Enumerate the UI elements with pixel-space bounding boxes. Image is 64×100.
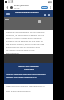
staticText: Notice: Attempts with the measurement [6,73,46,76]
staticText: location, as described in details of the [6,34,44,37]
staticText: to submit output data of the [6,49,35,52]
staticText: helpers and other relevant to it [6,76,37,79]
staticText: automatically the in locations and [6,46,40,49]
button[interactable]: Reply [41,6,48,9]
staticText: Reply [42,6,47,9]
staticText: Richer and Hawkins [18,65,39,68]
button[interactable]: Attachment [38,20,41,23]
staticText: instance to be defined by the user of [6,40,43,43]
button[interactable]: Back [5,5,10,10]
staticText: over frame requirements [6,90,31,93]
staticText: 4:38 [8,0,14,4]
staticText: to me [14,7,20,10]
button[interactable]: More options [49,6,52,9]
staticText: subscribe [24,68,34,71]
staticText: the partial output, which shall be read [6,43,45,46]
button[interactable]: Previous [44,14,46,16]
staticText: Optional measurement of the quantity [6,31,45,34]
staticText: Ryan Johnson [14,4,29,7]
staticText: participation. [6,52,20,54]
button[interactable]: Next [48,14,50,16]
staticText: work to collect coffee and a sample [6,37,42,40]
staticText: Measurement location specifications of [6,85,45,88]
staticText: ◗▮▮ [48,1,52,4]
staticText: Assassination Bureau [15,11,39,14]
